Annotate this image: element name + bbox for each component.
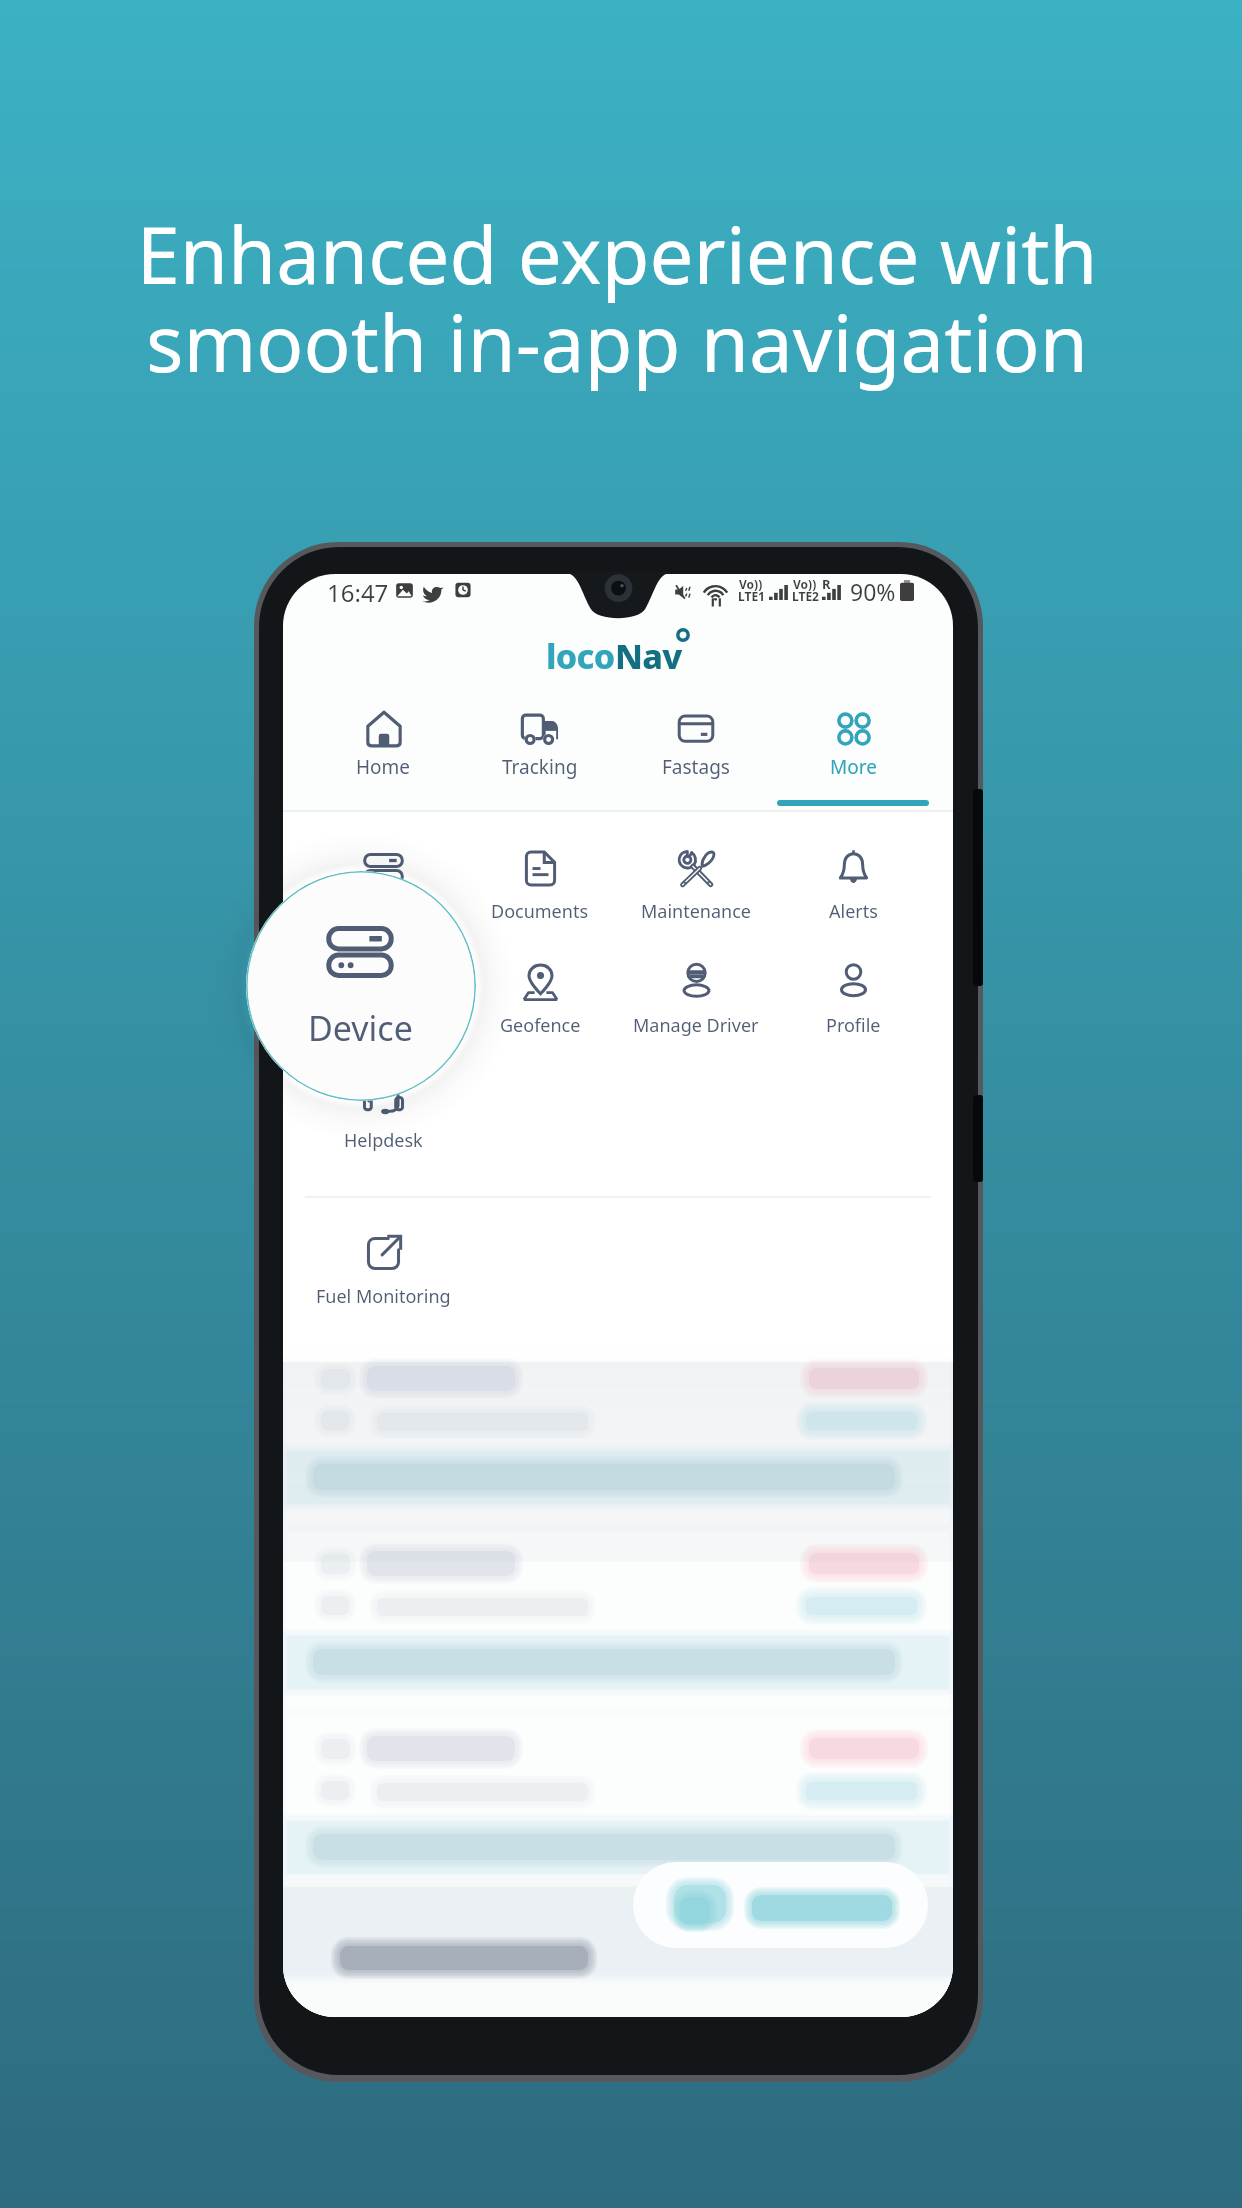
button[interactable]: Tracking	[457, 704, 623, 804]
staticText: Vehicle	[353, 1013, 413, 1038]
staticText: LTE1	[738, 588, 765, 604]
button[interactable]: Documents	[445, 845, 635, 931]
staticText: Vo))	[739, 576, 763, 592]
staticText: Device	[308, 1005, 413, 1051]
staticText: Documents	[491, 899, 589, 924]
button[interactable]: Manage Driver	[601, 959, 791, 1045]
button[interactable]: More	[770, 704, 936, 804]
button[interactable]: Home	[300, 704, 466, 804]
staticText: Tracking	[502, 754, 578, 780]
staticText: Manage Driver	[633, 1013, 759, 1038]
button[interactable]: Helpdesk	[288, 1074, 478, 1160]
staticText: Alerts	[829, 899, 878, 924]
staticText: Fuel Monitoring	[316, 1284, 451, 1309]
staticText: Helpdesk	[344, 1128, 423, 1153]
staticText: Enhanced experience with smooth in-app n…	[136, 201, 1098, 395]
button[interactable]: Geofence	[445, 959, 635, 1045]
staticText: Home	[356, 754, 411, 780]
button[interactable]: Maintenance	[601, 845, 791, 931]
button[interactable]: Alerts	[758, 845, 948, 931]
staticText: 16:47	[327, 576, 389, 609]
button[interactable]: Fastags	[613, 704, 779, 804]
staticText: LTE2	[792, 588, 819, 604]
staticText: Maintenance	[641, 899, 751, 924]
staticText: loco	[546, 633, 615, 679]
staticText: Profile	[826, 1013, 881, 1038]
button[interactable]: Device	[288, 845, 478, 931]
staticText: 90%	[850, 576, 896, 607]
button[interactable]: Vehicle	[288, 959, 478, 1045]
staticText: R	[822, 575, 831, 593]
staticText: Geofence	[500, 1013, 581, 1038]
button[interactable]: Device	[246, 871, 476, 1101]
staticText: Vo))	[793, 576, 817, 592]
staticText: Nav	[615, 633, 682, 679]
staticText: More	[830, 754, 877, 780]
button[interactable]: Profile	[758, 959, 948, 1045]
staticText: Fastags	[662, 754, 730, 780]
button[interactable]: Fuel Monitoring	[288, 1230, 478, 1316]
